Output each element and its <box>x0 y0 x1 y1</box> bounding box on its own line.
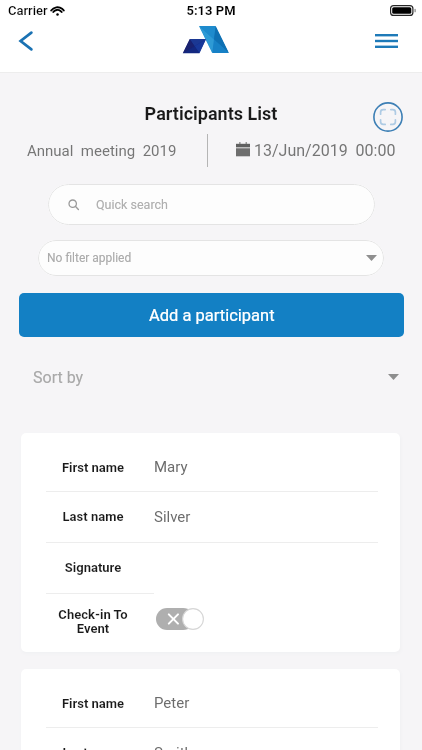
button[interactable]: Quick search <box>48 184 375 225</box>
staticText: 13/Jun/2019 00:00 <box>254 141 396 160</box>
button[interactable]: Add a participant <box>19 293 404 337</box>
staticText: Add a participant <box>149 306 275 325</box>
button[interactable]: First name <box>21 669 400 727</box>
button[interactable]: No filter applied <box>38 240 384 276</box>
staticText: Carrier <box>8 3 48 18</box>
staticText: Silver <box>154 508 191 526</box>
button[interactable]: Sort by <box>19 357 404 397</box>
button[interactable]: Check-in toggle <box>156 608 204 630</box>
staticText: 5:13 PM <box>0 3 422 18</box>
button[interactable]: Last name <box>21 727 400 750</box>
staticText: First name <box>45 696 141 711</box>
staticText: Last name <box>45 509 141 524</box>
button[interactable]: Last name <box>21 491 400 542</box>
staticText: No filter applied <box>47 251 132 265</box>
staticText: Signature <box>45 560 141 575</box>
staticText: First name <box>45 460 141 475</box>
staticText: Annual meeting 2019 <box>27 142 177 160</box>
staticText: Participants List <box>0 103 422 124</box>
staticText: Smith <box>154 744 193 750</box>
staticText: Peter <box>154 694 190 712</box>
button[interactable]: Menu <box>366 23 406 59</box>
staticText: Sort by <box>33 368 84 387</box>
staticText: Mary <box>154 458 188 476</box>
button[interactable]: Signature <box>21 542 400 593</box>
button[interactable]: First name <box>21 433 400 491</box>
staticText: Check-in To Event <box>45 607 141 636</box>
staticText: Quick search <box>96 197 168 212</box>
button[interactable]: Check-in To Event <box>21 593 400 652</box>
button[interactable]: Scan QR code <box>369 98 407 136</box>
button[interactable]: Back <box>8 23 44 59</box>
staticText: Last name <box>45 745 141 750</box>
